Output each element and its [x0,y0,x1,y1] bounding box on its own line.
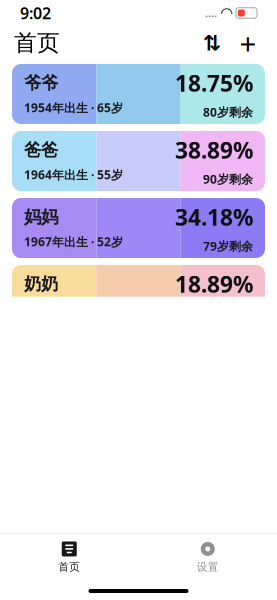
button[interactable]: Add [233,28,263,58]
button[interactable]: 爸爸 [12,131,265,191]
staticText: 1964年出生 · 55岁 [24,167,123,183]
staticText: 9:02 [20,2,51,24]
button[interactable]: 妈妈 [12,198,265,258]
staticText: 爸爸 [24,139,58,161]
staticText: 34.18% [175,202,253,232]
staticText: 设置 [197,560,219,573]
staticText: 18.75% [175,68,253,98]
staticText: ⇅ [203,31,221,55]
staticText: ◠ [221,5,232,21]
staticText: 79岁剩余 [203,238,253,254]
button[interactable]: 奶奶 [12,265,265,325]
staticText: 爷爷 [24,72,58,94]
staticText: 妈妈 [24,206,58,228]
staticText: 奶奶 [24,273,58,295]
button[interactable]: Sort [197,28,227,58]
button[interactable]: 设置 [138,540,277,573]
staticText: 1954年出生 · 65岁 [24,100,123,116]
staticText: .... [205,6,217,20]
staticText: 38.89% [175,135,253,165]
staticText: + [239,23,256,62]
staticText: 80岁剩余 [203,104,253,120]
staticText: 首页 [58,560,80,573]
staticText: 90岁剩余 [203,171,253,187]
button[interactable]: 爷爷 [12,64,265,124]
staticText: 1967年出生 · 52岁 [24,234,123,250]
staticText: 18.89% [175,269,253,299]
staticText: 首页 [14,29,60,57]
button[interactable]: 首页 [0,540,138,573]
